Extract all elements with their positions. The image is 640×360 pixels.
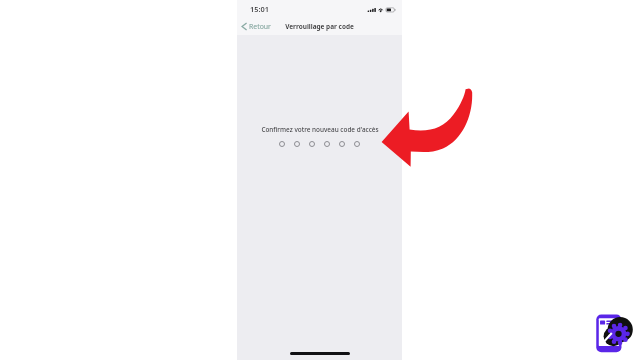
button[interactable]: Retour [239, 18, 273, 35]
button[interactable]: Champ code d'accès [277, 140, 362, 148]
button[interactable]: App logo [595, 312, 637, 354]
staticText: Verrouillage par code [285, 22, 354, 31]
staticText: 15:01 [250, 4, 269, 14]
staticText: Retour [249, 22, 271, 31]
staticText: Confirmez votre nouveau code d'accès [261, 125, 379, 134]
